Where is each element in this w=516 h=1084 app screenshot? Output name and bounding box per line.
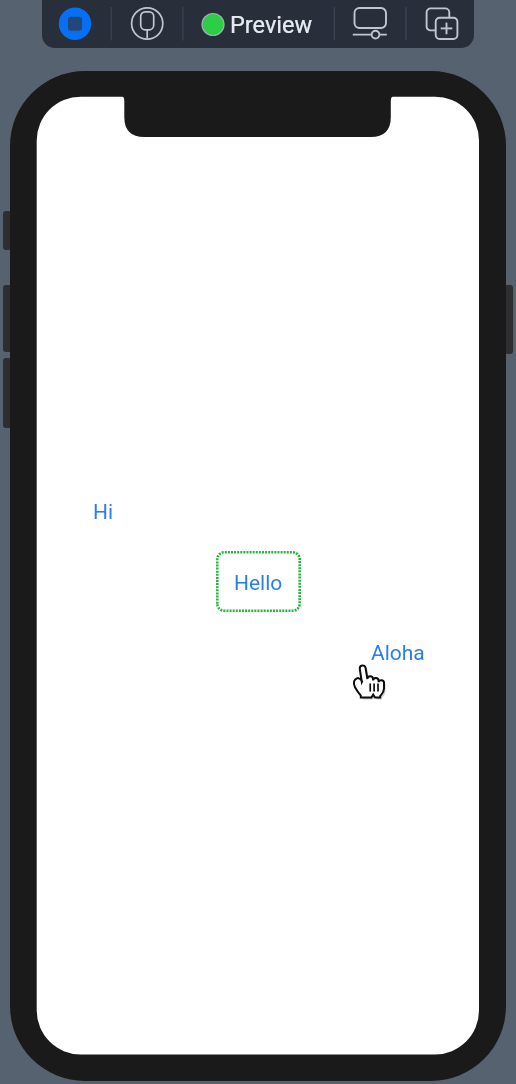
staticText: Hello	[234, 571, 283, 596]
button[interactable]: Hi	[93, 500, 114, 525]
button[interactable]: Preview	[198, 8, 320, 42]
button[interactable]: Aloha	[371, 641, 425, 666]
button[interactable]: Live preview	[348, 2, 392, 46]
staticText: Preview	[230, 11, 313, 39]
button[interactable]: Hello	[216, 551, 301, 612]
button[interactable]: Select device	[125, 2, 169, 46]
button[interactable]: Add preview	[420, 2, 464, 46]
button[interactable]: Stop preview	[53, 2, 97, 46]
